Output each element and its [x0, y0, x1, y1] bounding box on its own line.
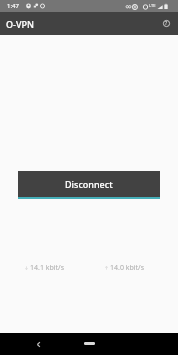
- button[interactable]: Help: [157, 14, 175, 32]
- button[interactable]: Back: [30, 336, 46, 352]
- staticText: LTE: [149, 3, 156, 8]
- staticText: O-VPN: [6, 18, 34, 30]
- button[interactable]: Disconnect: [18, 171, 160, 199]
- staticText: 14.0 kbit/s: [110, 263, 145, 273]
- button[interactable]: Home: [74, 335, 104, 351]
- staticText: 1:47: [7, 2, 19, 10]
- staticText: Disconnect: [65, 178, 113, 190]
- staticText: 14.1 kbit/s: [30, 263, 65, 273]
- staticText: ?: [165, 20, 168, 27]
